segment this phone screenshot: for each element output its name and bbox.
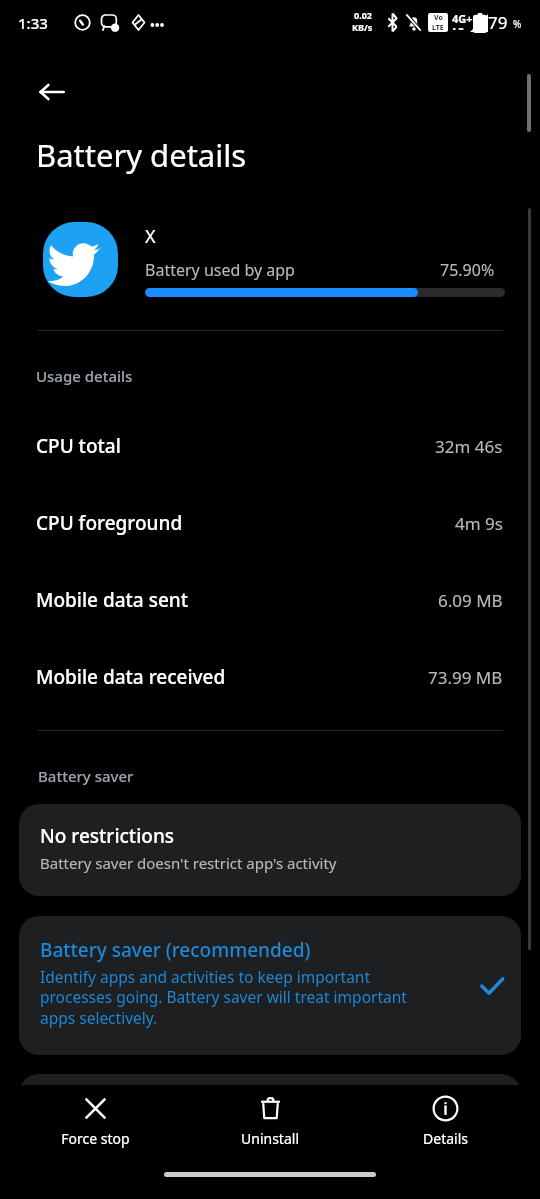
button[interactable]: Back: [22, 62, 82, 122]
button[interactable]: Battery saver (recommended): [19, 916, 521, 1055]
staticText: CPU total: [36, 433, 121, 459]
button[interactable]: Details: [365, 1085, 525, 1165]
staticText: 4G+: [452, 11, 473, 26]
button[interactable]: Mobile data sent: [0, 580, 540, 620]
staticText: Force stop: [61, 1129, 130, 1148]
staticText: %: [513, 17, 522, 31]
staticText: Vo: [434, 13, 443, 23]
button[interactable]: No restrictions: [19, 804, 521, 896]
staticText: Battery saver doesn't restrict app's act…: [40, 853, 337, 873]
staticText: LTE: [432, 23, 444, 32]
staticText: 0.02: [354, 9, 372, 21]
staticText: Mobile data received: [36, 664, 226, 690]
staticText: CPU foreground: [36, 510, 183, 536]
staticText: Identify apps and activities to keep imp…: [40, 966, 440, 1029]
staticText: No restrictions: [40, 823, 175, 849]
staticText: Battery used by app: [145, 259, 295, 281]
staticText: 32m 46s: [435, 435, 503, 458]
staticText: KB/s: [352, 21, 373, 33]
staticText: Mobile data sent: [36, 587, 189, 613]
button[interactable]: Uninstall: [190, 1085, 350, 1165]
button[interactable]: CPU foreground: [0, 503, 540, 543]
staticText: Battery saver (recommended): [40, 937, 311, 963]
staticText: Battery saver: [38, 766, 134, 786]
staticText: Details: [423, 1129, 468, 1148]
button[interactable]: Force stop: [15, 1085, 175, 1165]
button[interactable]: Mobile data received: [0, 657, 540, 697]
staticText: 79: [488, 11, 508, 34]
staticText: 73.99 MB: [428, 666, 503, 689]
staticText: Battery details: [36, 134, 247, 176]
staticText: X: [145, 224, 156, 249]
staticText: Uninstall: [241, 1129, 299, 1148]
staticText: 4m 9s: [455, 512, 503, 535]
staticText: Usage details: [36, 366, 133, 386]
staticText: 6.09 MB: [438, 589, 503, 612]
button[interactable]: CPU total: [0, 426, 540, 466]
staticText: 1:33: [18, 13, 48, 33]
staticText: 75.90%: [440, 259, 495, 281]
button[interactable]: [19, 1074, 521, 1134]
